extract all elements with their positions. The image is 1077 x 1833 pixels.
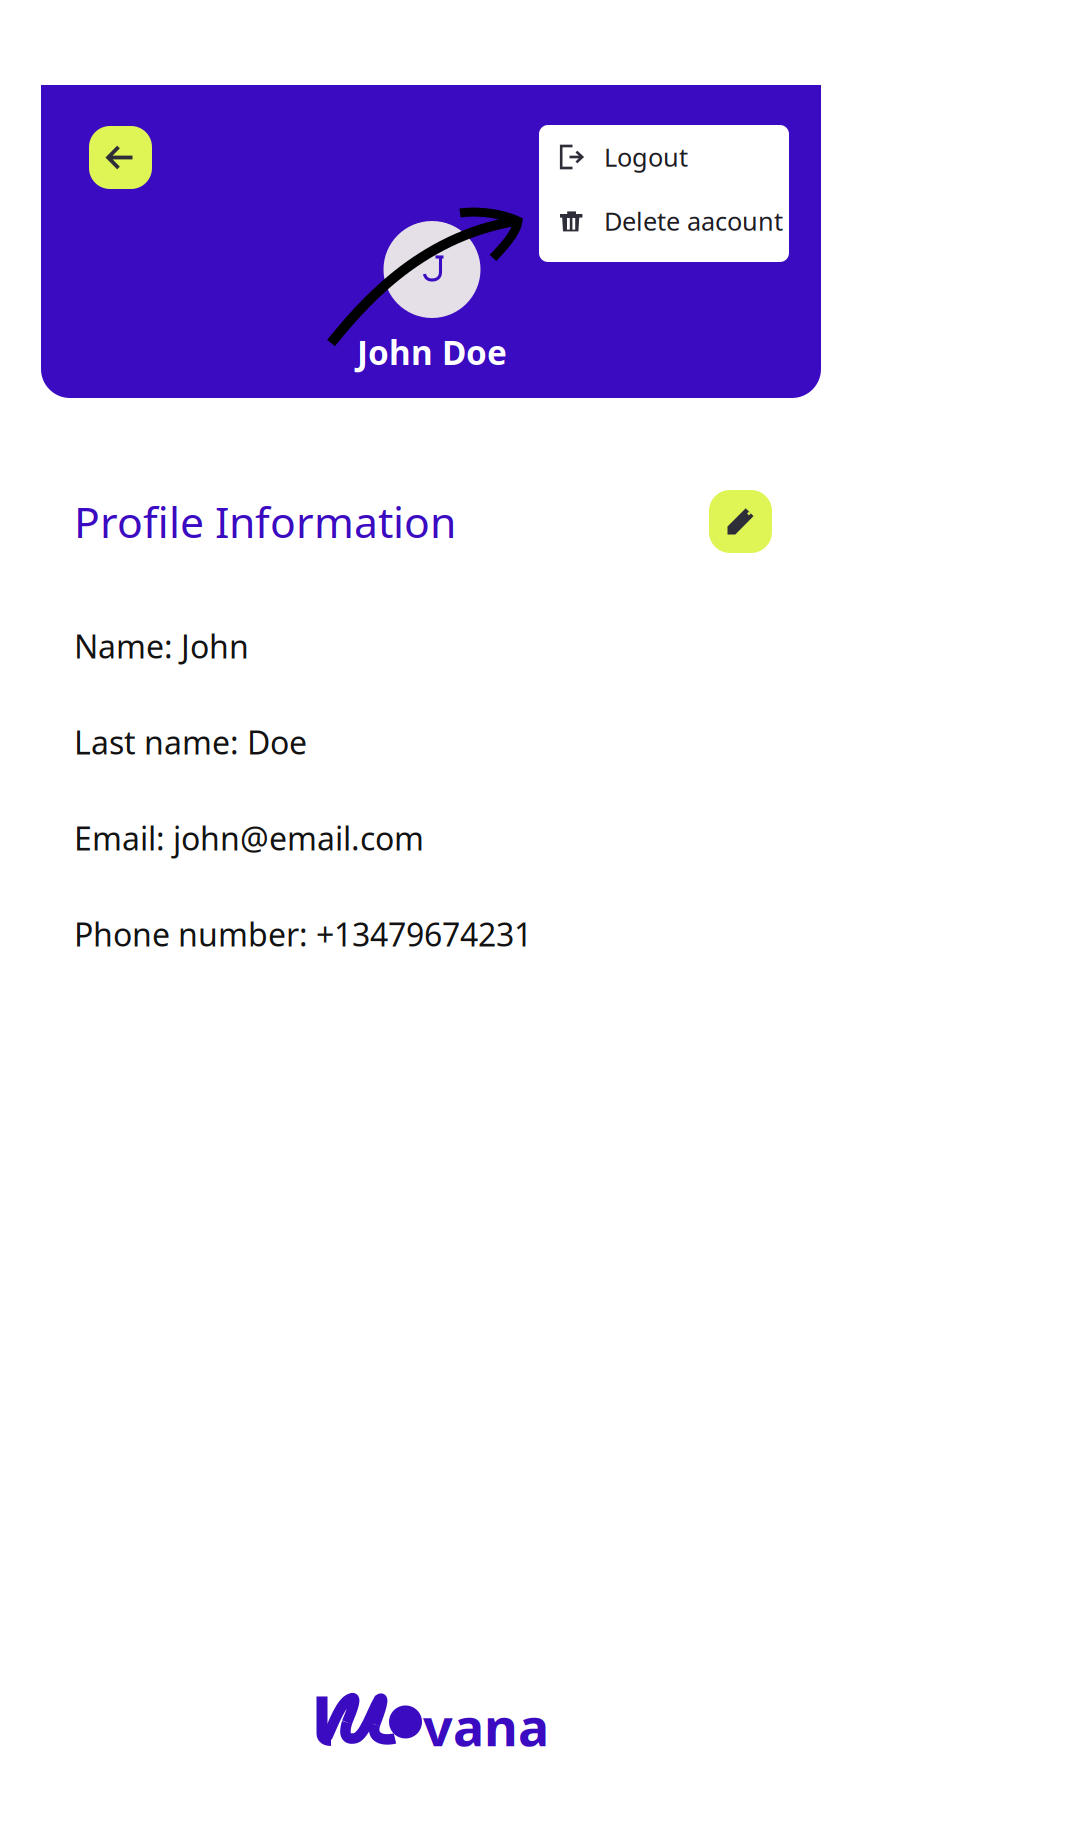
staticText: Logout xyxy=(604,140,688,174)
staticText: Name: John xyxy=(74,625,249,667)
button[interactable]: Edit profile xyxy=(709,490,772,553)
staticText: Email: john@email.com xyxy=(74,817,424,859)
staticText: Last name: Doe xyxy=(74,721,307,763)
button[interactable]: Logout xyxy=(539,125,789,189)
staticText: Profile Information xyxy=(74,493,456,550)
staticText: John Doe xyxy=(357,330,507,374)
button[interactable]: Delete aacount xyxy=(539,189,789,253)
staticText: Phone number: +13479674231 xyxy=(74,913,532,955)
button[interactable]: Back xyxy=(89,126,152,189)
staticText: Delete aacount xyxy=(604,204,783,238)
staticText: vana xyxy=(423,1691,549,1761)
